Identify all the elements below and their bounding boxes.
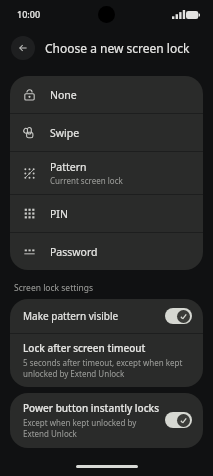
staticText: Power button instantly locks — [23, 401, 159, 415]
staticText: Make pattern visible — [23, 309, 165, 323]
staticText: Password — [50, 245, 98, 259]
button[interactable]: Pattern — [10, 152, 203, 194]
button[interactable]: None — [10, 76, 203, 113]
button[interactable]: Toggle on — [165, 308, 192, 324]
button[interactable]: PIN — [10, 195, 203, 232]
staticText: PIN — [50, 207, 68, 221]
staticText: None — [50, 88, 77, 102]
button[interactable]: Password — [10, 233, 203, 270]
button[interactable]: Back — [11, 36, 35, 60]
staticText: Swipe — [50, 126, 80, 140]
staticText: Except when kept unlocked by Extend Unlo… — [23, 417, 159, 439]
button[interactable]: Swipe — [10, 114, 203, 151]
button[interactable]: Power button instantly locks — [10, 393, 203, 448]
staticText: Pattern — [50, 160, 87, 174]
staticText: Screen lock settings — [14, 282, 94, 294]
button[interactable]: Toggle on — [165, 412, 192, 428]
button[interactable]: Lock after screen timeout — [10, 334, 203, 387]
staticText: Choose a new screen lock — [45, 40, 190, 56]
button[interactable]: Make pattern visible — [10, 299, 203, 333]
staticText: 5 seconds after timeout, except when kep… — [23, 357, 189, 379]
staticText: Lock after screen timeout — [23, 341, 146, 355]
staticText: 10:00 — [17, 8, 41, 20]
staticText: Current screen lock — [50, 175, 123, 186]
